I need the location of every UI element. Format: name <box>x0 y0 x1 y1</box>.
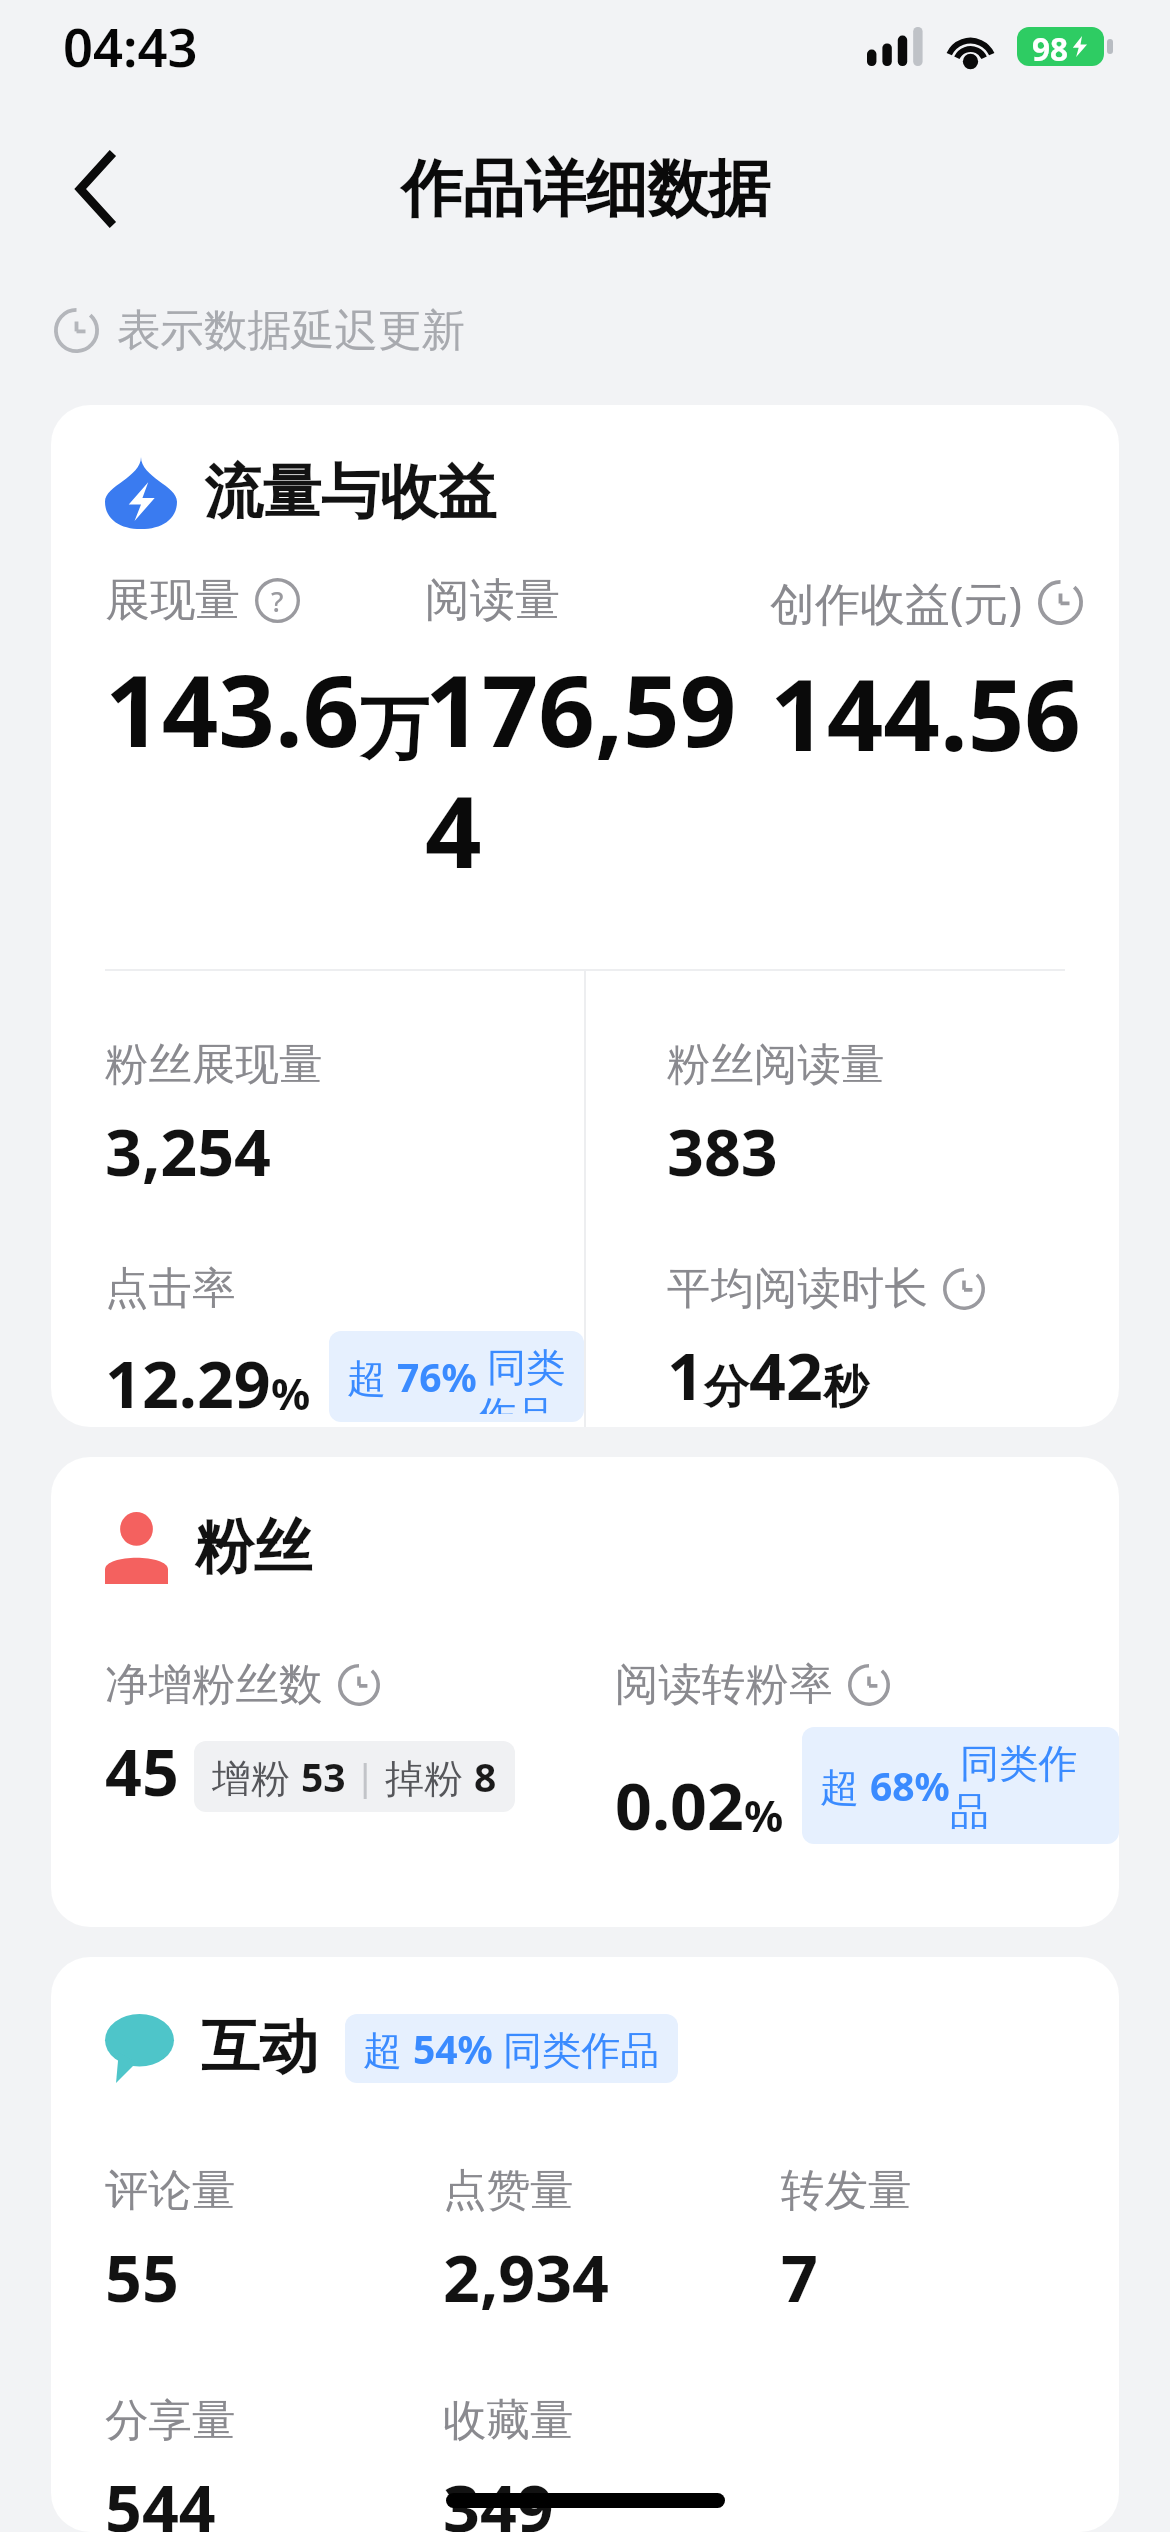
staticText: 55 <box>105 2233 179 2321</box>
staticText: 544 <box>105 2463 216 2532</box>
staticText: 粉丝展现量 <box>105 1037 323 1092</box>
staticText: 3,254 <box>105 1107 271 1195</box>
staticText: 同类作品 <box>950 1735 1101 1836</box>
staticText: 04:43 <box>63 11 198 83</box>
staticText: % <box>744 1785 784 1844</box>
staticText: 176,594 <box>425 641 770 897</box>
staticText: 143.6 <box>105 641 360 776</box>
staticText: 2,934 <box>443 2233 609 2321</box>
staticText: 秒 <box>823 1359 868 1416</box>
staticText: 粉丝 <box>195 1511 312 1585</box>
staticText: 创作收益(元) <box>770 572 1023 633</box>
staticText: 0.02 <box>615 1761 744 1849</box>
staticText: 53 <box>301 1750 346 1803</box>
staticText: 收藏量 <box>443 2393 574 2448</box>
staticText: 流量与收益 <box>204 456 497 530</box>
staticText: 掉粉 <box>385 1750 474 1803</box>
staticText: 平均阅读时长 <box>667 1261 928 1316</box>
staticText: 净增粉丝数 <box>105 1657 323 1712</box>
staticText: 阅读量 <box>425 572 560 629</box>
staticText: 展现量 <box>105 572 240 629</box>
staticText: 98 <box>1032 27 1069 66</box>
staticText: 同类作品 <box>477 1339 566 1414</box>
staticText: 评论量 <box>105 2163 236 2218</box>
staticText: 45 <box>105 1727 179 1815</box>
staticText: 互动 <box>201 2011 318 2085</box>
staticText: 分享量 <box>105 2393 236 2448</box>
staticText: 万 <box>360 686 425 773</box>
staticText: 68% <box>870 1759 950 1812</box>
staticText: 349 <box>443 2463 554 2532</box>
staticText: 8 <box>474 1750 497 1803</box>
staticText: ? <box>271 582 284 620</box>
staticText: 54% <box>413 2022 493 2075</box>
staticText: 144.56 <box>770 645 1081 780</box>
staticText: 超 <box>347 1350 397 1403</box>
staticText: 超 <box>363 2022 413 2075</box>
staticText: % <box>271 1363 311 1422</box>
staticText: 点击率 <box>105 1261 236 1316</box>
staticText: 7 <box>781 2233 818 2321</box>
staticText: 增粉 <box>212 1750 301 1803</box>
staticText: 超 <box>820 1759 870 1812</box>
staticText: 42 <box>749 1331 823 1419</box>
button[interactable]: Back <box>24 117 168 261</box>
staticText: 1 <box>667 1331 704 1419</box>
staticText: | <box>346 1752 385 1801</box>
staticText: 作品详细数据 <box>401 151 770 228</box>
staticText: 粉丝阅读量 <box>667 1037 885 1092</box>
staticText: 12.29 <box>105 1339 271 1427</box>
staticText: 分 <box>704 1359 749 1416</box>
staticText: 76% <box>397 1350 477 1403</box>
staticText: 383 <box>667 1107 778 1195</box>
staticText: 转发量 <box>781 2163 912 2218</box>
staticText: 同类作品 <box>493 2022 660 2075</box>
staticText: 表示数据延迟更新 <box>117 303 465 358</box>
staticText: 阅读转粉率 <box>615 1657 833 1712</box>
staticText: 点赞量 <box>443 2163 574 2218</box>
